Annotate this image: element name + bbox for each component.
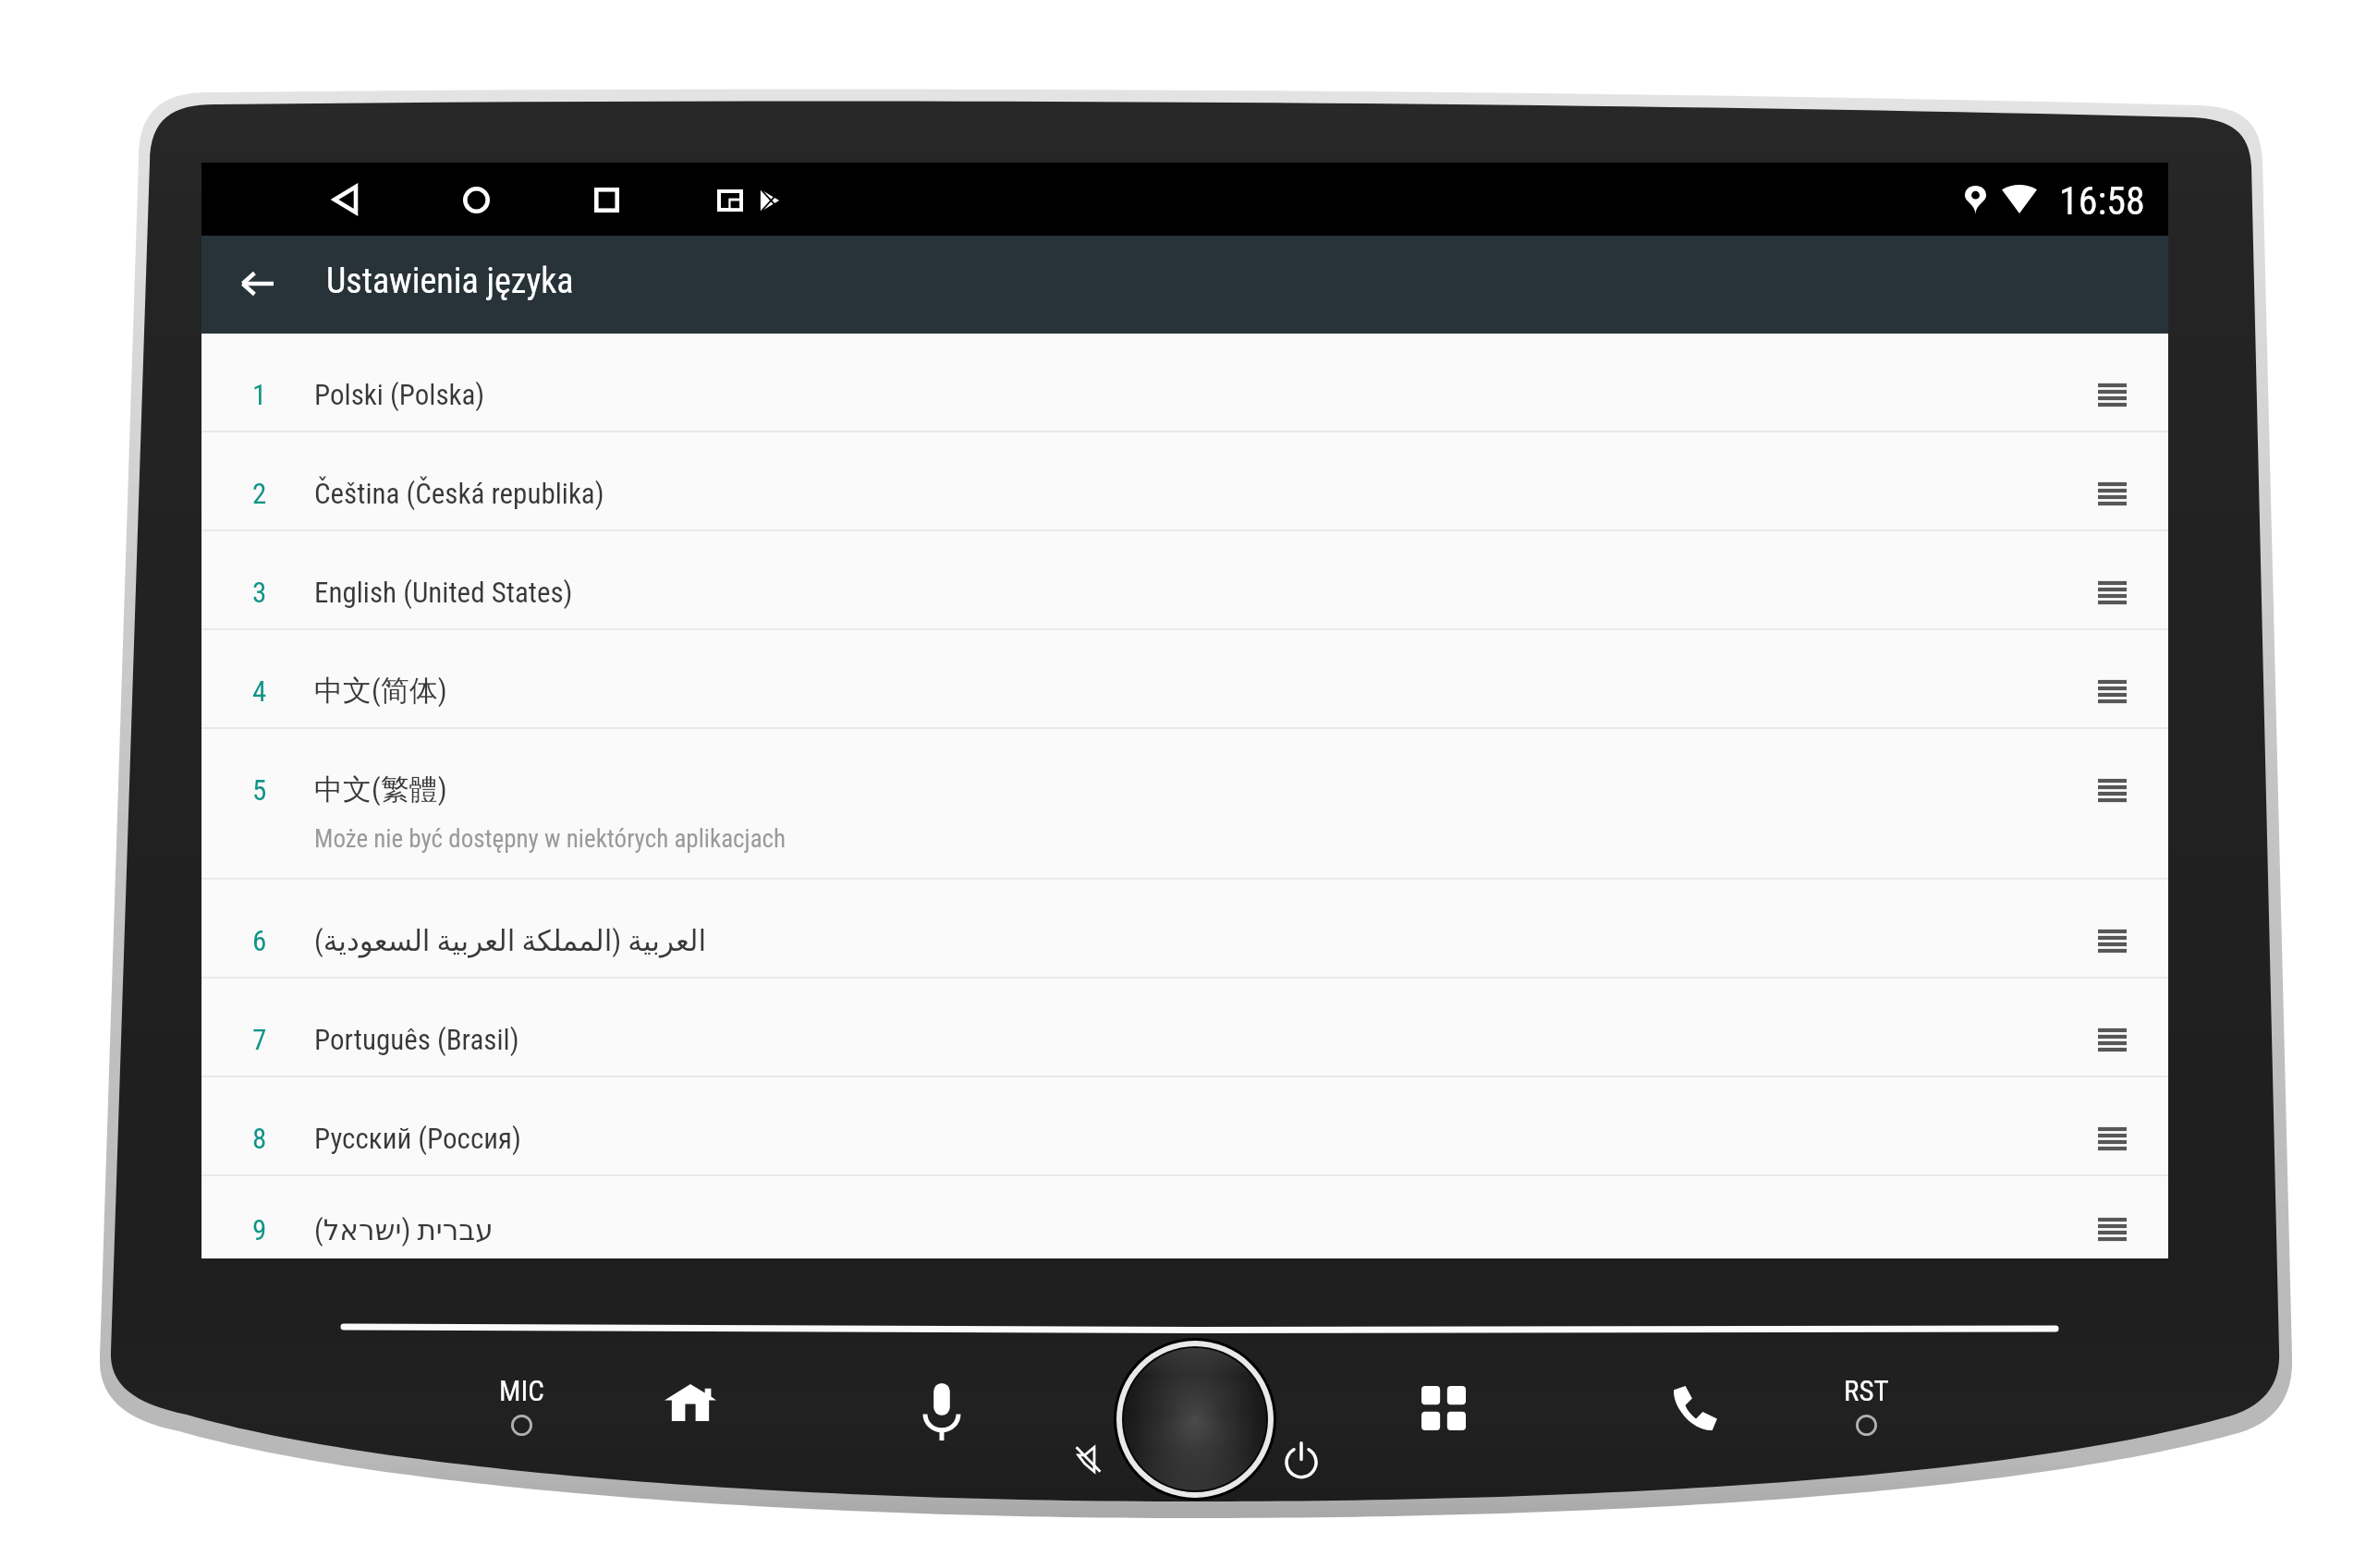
button[interactable]: Mute xyxy=(1059,1430,1116,1488)
button[interactable]: Reorder xyxy=(2066,744,2158,836)
staticText: Português (Brasil) xyxy=(314,1023,519,1056)
staticText: العربية (المملكة العربية السعودية) xyxy=(314,924,707,957)
staticText: עברית (ישראל) xyxy=(314,1213,494,1246)
button[interactable]: Reorder xyxy=(2066,993,2158,1086)
staticText: Русский (Россия) xyxy=(314,1122,521,1155)
staticText: Čeština (Česká republika) xyxy=(314,477,604,510)
button[interactable]: Phone xyxy=(1649,1363,1741,1455)
staticText: 1 xyxy=(252,378,267,411)
button[interactable]: Picture in picture xyxy=(717,189,743,212)
button[interactable]: Power xyxy=(1271,1430,1332,1491)
staticText: 6 xyxy=(252,924,267,957)
button[interactable]: Reset xyxy=(1814,1374,1918,1463)
button[interactable]: 2 xyxy=(201,432,2168,531)
button[interactable]: Reorder xyxy=(2066,348,2158,441)
button[interactable]: 5 xyxy=(201,729,2168,880)
button[interactable]: 3 xyxy=(201,531,2168,630)
button[interactable]: Voice command xyxy=(896,1366,988,1458)
button[interactable]: Reorder xyxy=(2066,645,2158,737)
staticText: Polski (Polska) xyxy=(314,378,485,411)
button[interactable]: Reorder xyxy=(2066,546,2158,638)
button[interactable]: Recent apps xyxy=(594,188,619,213)
button[interactable]: Reorder xyxy=(2066,1092,2158,1185)
staticText: 2 xyxy=(252,477,267,510)
button[interactable]: Home xyxy=(463,187,490,213)
button[interactable]: 4 xyxy=(201,630,2168,729)
button[interactable]: 1 xyxy=(201,334,2168,432)
button[interactable]: Microphone indicator xyxy=(470,1374,573,1463)
staticText: English (United States) xyxy=(314,576,573,609)
staticText: 中文(繁體) xyxy=(314,772,447,808)
button[interactable]: Home xyxy=(644,1364,737,1441)
button[interactable]: Navigate up xyxy=(218,244,298,323)
staticText: 8 xyxy=(252,1122,267,1155)
staticText: Może nie być dostępny w niektórych aplik… xyxy=(314,824,787,854)
button[interactable]: Reorder xyxy=(2066,1188,2158,1270)
staticText: 7 xyxy=(252,1023,267,1056)
button[interactable]: 8 xyxy=(201,1077,2168,1176)
button[interactable]: 9 xyxy=(201,1176,2168,1258)
staticText: 4 xyxy=(252,675,267,708)
staticText: 3 xyxy=(252,576,267,609)
staticText: 9 xyxy=(252,1213,267,1246)
staticText: MIC xyxy=(499,1374,544,1407)
button[interactable]: 6 xyxy=(201,880,2168,978)
staticText: 5 xyxy=(252,773,267,807)
staticText: 16:58 xyxy=(2059,178,2145,224)
button[interactable]: Reorder xyxy=(2066,894,2158,987)
button[interactable]: Reorder xyxy=(2066,447,2158,540)
button[interactable]: Play Store xyxy=(760,189,780,212)
staticText: RST xyxy=(1844,1374,1889,1407)
button[interactable]: 7 xyxy=(201,978,2168,1077)
staticText: 中文(简体) xyxy=(314,673,447,709)
button[interactable]: Back xyxy=(333,185,358,214)
staticText: Ustawienia języka xyxy=(326,261,574,302)
button[interactable]: Apps xyxy=(1397,1362,1490,1454)
